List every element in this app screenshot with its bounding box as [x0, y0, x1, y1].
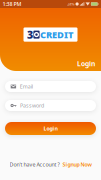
staticText: 3 — [27, 27, 33, 42]
staticText: 24% — [67, 1, 74, 7]
button[interactable]: Signup Now — [62, 161, 91, 168]
button[interactable]: Login — [5, 122, 96, 135]
staticText: Password — [20, 102, 44, 109]
staticText: 1:38 PM — [2, 0, 21, 8]
staticText: Login — [43, 125, 57, 132]
staticText: Login — [77, 59, 95, 68]
staticText: Don't have Account ? — [9, 161, 59, 168]
staticText: Signup Now — [62, 161, 91, 168]
staticText: Email — [20, 83, 33, 90]
button[interactable]: Login — [77, 59, 95, 68]
staticText: CREDIT — [40, 28, 74, 41]
